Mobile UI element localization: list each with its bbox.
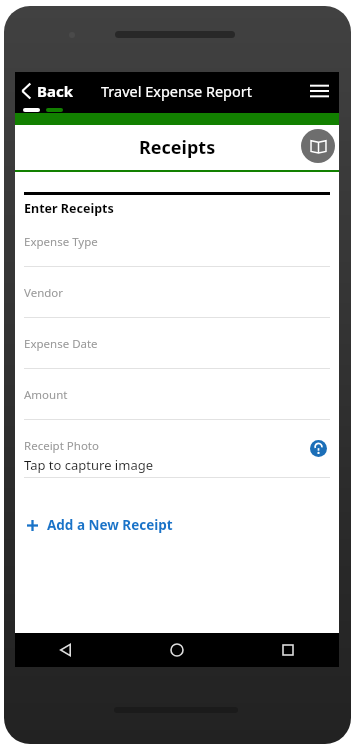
button[interactable]: Menu	[299, 71, 339, 111]
button[interactable]: Tap to capture image	[24, 456, 330, 474]
staticText: Receipt Photo	[24, 438, 99, 454]
button[interactable]: Recent apps	[271, 633, 305, 667]
staticText: Receipts	[139, 135, 216, 160]
button[interactable]: Back	[15, 77, 80, 105]
button[interactable]: Add a New Receipt	[24, 510, 175, 540]
button[interactable]: Expense Date	[24, 336, 330, 369]
staticText: Enter Receipts	[24, 200, 114, 217]
staticText: Travel Expense Report	[101, 81, 253, 101]
staticText: Back	[37, 81, 74, 101]
button[interactable]: Open guide	[301, 129, 335, 163]
button[interactable]: Vendor	[24, 285, 330, 318]
staticText: Expense Type	[24, 234, 98, 250]
staticText: Vendor	[24, 285, 64, 301]
button[interactable]: Expense Type	[24, 234, 330, 267]
button[interactable]: Back	[49, 633, 83, 667]
button[interactable]: Amount	[24, 387, 330, 420]
staticText: Add a New Receipt	[47, 516, 173, 534]
staticText: Expense Date	[24, 336, 98, 352]
staticText: Tap to capture image	[24, 456, 153, 474]
button[interactable]: Home	[160, 633, 194, 667]
button[interactable]: Help	[306, 436, 330, 460]
staticText: Amount	[24, 387, 68, 403]
